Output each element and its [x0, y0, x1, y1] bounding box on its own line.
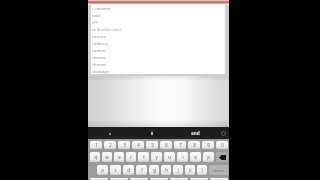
- staticText: 5: [151, 142, 154, 148]
- button[interactable]: i: [177, 152, 188, 162]
- button[interactable]: l: [197, 165, 207, 175]
- staticText: n: [198, 178, 201, 180]
- button[interactable]: 5: [146, 141, 158, 149]
- staticText: cadburg: [92, 41, 108, 46]
- button[interactable]: Hide predictions: [217, 127, 229, 139]
- staticText: s: [114, 167, 117, 173]
- button[interactable]: cold: [91, 12, 225, 19]
- staticText: 2: [109, 142, 112, 148]
- button[interactable]: cassete: [91, 33, 225, 40]
- staticText: o: [194, 154, 197, 160]
- button[interactable]: f: [136, 165, 147, 175]
- button[interactable]: 7: [174, 141, 186, 149]
- button[interactable]: Return: [209, 165, 228, 175]
- staticText: cleaner: [92, 55, 106, 60]
- staticText: f: [141, 167, 143, 173]
- button[interactable]: c: [130, 178, 148, 180]
- staticText: 6: [165, 142, 168, 148]
- staticText: i: [182, 154, 184, 160]
- staticText: u: [168, 154, 171, 160]
- staticText: 4: [137, 142, 140, 148]
- button[interactable]: 8: [188, 141, 200, 149]
- staticText: chrome: [92, 62, 107, 67]
- staticText: cherokyn: [92, 69, 110, 74]
- staticText: t: [143, 154, 145, 160]
- button[interactable]: y: [151, 152, 162, 162]
- staticText: c??: [92, 20, 98, 25]
- button[interactable]: e: [114, 152, 124, 162]
- button[interactable]: r: [126, 152, 136, 162]
- button[interactable]: cadburg: [91, 40, 225, 47]
- button[interactable]: cherokyn: [91, 68, 225, 74]
- staticText: 0: [221, 142, 224, 148]
- button[interactable]: 0: [216, 141, 228, 149]
- staticText: c: [138, 178, 141, 180]
- staticText: and: [191, 130, 200, 136]
- staticText: cold: [92, 13, 100, 18]
- button[interactable]: Suggestion one: [88, 127, 131, 139]
- button[interactable]: q: [90, 152, 100, 162]
- button[interactable]: Suggestion two: [131, 127, 173, 139]
- staticText: q: [94, 154, 97, 160]
- button[interactable]: g: [149, 165, 159, 175]
- staticText: l: [201, 167, 203, 173]
- button[interactable]: h: [161, 165, 171, 175]
- staticText: 7: [179, 142, 182, 148]
- button[interactable]: z: [90, 178, 108, 180]
- staticText: e: [118, 154, 121, 160]
- staticText: h: [165, 167, 168, 173]
- staticText: r: [130, 154, 132, 160]
- button[interactable]: w: [102, 152, 112, 162]
- button[interactable]: o: [190, 152, 201, 162]
- button[interactable]: k: [185, 165, 195, 175]
- button[interactable]: b: [170, 178, 188, 180]
- button[interactable]: and: [173, 127, 217, 139]
- staticText: k: [189, 167, 192, 173]
- button[interactable]: s: [110, 165, 121, 175]
- button[interactable]: carbon: [91, 47, 225, 54]
- button[interactable]: 3: [118, 141, 130, 149]
- staticText: d: [127, 167, 130, 173]
- staticText: cassete: [92, 34, 106, 39]
- staticText: c cassette: [92, 6, 111, 11]
- button[interactable]: cleaner: [91, 54, 225, 61]
- staticText: w: [105, 154, 109, 160]
- staticText: 1: [95, 142, 98, 148]
- staticText: v: [158, 178, 161, 180]
- button[interactable]: j: [173, 165, 183, 175]
- staticText: x: [118, 178, 121, 180]
- button[interactable]: 4: [132, 141, 144, 149]
- button[interactable]: x: [110, 178, 128, 180]
- staticText: g: [153, 167, 156, 173]
- button[interactable]: t: [138, 152, 149, 162]
- staticText: p: [207, 154, 210, 160]
- staticText: b: [178, 178, 181, 180]
- button[interactable]: c cassette: [91, 5, 225, 12]
- button[interactable]: p: [203, 152, 214, 162]
- staticText: m: [217, 178, 222, 180]
- staticText: j: [177, 167, 179, 173]
- button[interactable]: cc (broken one): [91, 26, 225, 33]
- staticText: return: [213, 168, 224, 173]
- button[interactable]: 6: [160, 141, 172, 149]
- button[interactable]: a: [97, 165, 108, 175]
- staticText: cc (broken one): [92, 27, 121, 32]
- button[interactable]: d: [123, 165, 134, 175]
- button[interactable]: v: [150, 178, 168, 180]
- staticText: z: [98, 178, 101, 180]
- staticText: y: [155, 154, 158, 160]
- staticText: 3: [123, 142, 126, 148]
- button[interactable]: 2: [104, 141, 116, 149]
- button[interactable]: chrome: [91, 61, 225, 68]
- staticText: a: [101, 167, 104, 173]
- staticText: carbon: [92, 48, 106, 53]
- button[interactable]: c??: [91, 19, 225, 26]
- button[interactable]: Backspace: [216, 152, 228, 162]
- staticText: 8: [193, 142, 196, 148]
- button[interactable]: 1: [90, 141, 102, 149]
- button[interactable]: m: [210, 178, 228, 180]
- button[interactable]: 9: [202, 141, 214, 149]
- button[interactable]: u: [164, 152, 175, 162]
- button[interactable]: n: [190, 178, 208, 180]
- staticText: 9: [207, 142, 210, 148]
